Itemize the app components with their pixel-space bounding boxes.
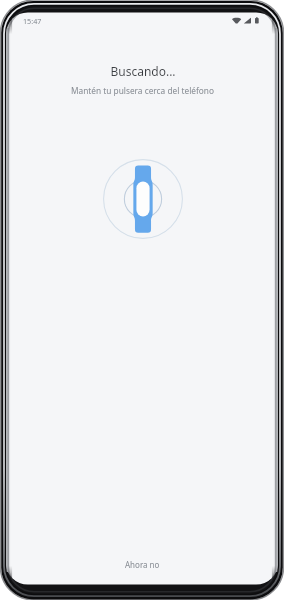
button[interactable]: Ahora no [111, 553, 174, 576]
other: Estado [232, 17, 260, 24]
staticText: Ahora no [125, 559, 160, 570]
staticText: Buscando... [110, 63, 176, 79]
staticText: 15:47 [23, 16, 42, 26]
staticText: Mantén tu pulsera cerca del teléfono [71, 85, 214, 96]
